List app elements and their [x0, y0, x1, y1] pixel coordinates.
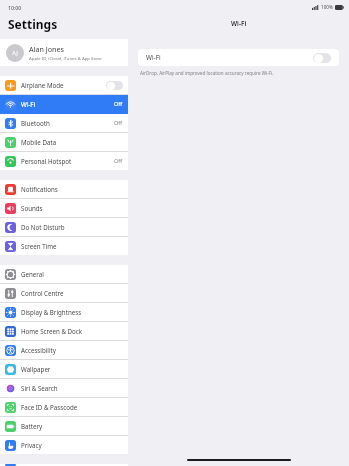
staticText: Wi-Fi: [146, 53, 161, 62]
staticText: Privacy: [21, 441, 42, 449]
button[interactable]: Wi-Fi: [0, 95, 128, 113]
staticText: Apple ID, iCloud, iTunes & App Store: [29, 55, 102, 61]
button[interactable]: Notifications: [0, 180, 128, 198]
staticText: Face ID & Passcode: [21, 403, 78, 411]
staticText: 10:00: [8, 4, 22, 11]
staticText: Bluetooth: [21, 119, 50, 127]
staticText: Wi-Fi: [231, 19, 247, 28]
button[interactable]: Siri & Search: [0, 379, 128, 397]
staticText: General: [21, 270, 44, 278]
button[interactable]: Personal Hotspot: [0, 152, 128, 170]
button[interactable]: Bluetooth: [0, 114, 128, 132]
staticText: Home Screen & Dock: [21, 327, 83, 335]
staticText: Control Centre: [21, 289, 64, 297]
staticText: Wi-Fi: [21, 100, 36, 108]
staticText: Mobile Data: [21, 138, 57, 146]
staticText: Battery: [21, 422, 43, 430]
button[interactable]: Sounds: [0, 199, 128, 217]
button[interactable]: Display & Brightness: [0, 303, 128, 321]
staticText: Off: [114, 157, 123, 165]
button[interactable]: Wi-Fi: [138, 49, 339, 66]
staticText: Settings: [8, 16, 58, 32]
staticText: Sounds: [21, 204, 43, 212]
staticText: Accessibility: [21, 346, 56, 354]
staticText: Display & Brightness: [21, 308, 82, 316]
staticText: Wallpaper: [21, 365, 51, 373]
staticText: Personal Hotspot: [21, 157, 72, 165]
button[interactable]: AJ: [0, 39, 128, 66]
button[interactable]: iTunes & App Store: [0, 464, 128, 466]
staticText: Do Not Disturb: [21, 223, 65, 231]
button[interactable]: Airplane Mode: [0, 76, 128, 94]
button[interactable]: Toggle off: [106, 81, 123, 90]
staticText: Alan Jones: [29, 44, 65, 54]
button[interactable]: Accessibility: [0, 341, 128, 359]
staticText: Screen Time: [21, 242, 57, 250]
button[interactable]: Wallpaper: [0, 360, 128, 378]
button[interactable]: Privacy: [0, 436, 128, 454]
button[interactable]: Screen Time: [0, 237, 128, 255]
button[interactable]: Do Not Disturb: [0, 218, 128, 236]
staticText: Airplane Mode: [21, 81, 64, 89]
staticText: 100%: [321, 4, 333, 10]
staticText: Siri & Search: [21, 384, 58, 392]
button[interactable]: General: [0, 265, 128, 283]
button[interactable]: Battery: [0, 417, 128, 435]
staticText: AJ: [12, 49, 18, 57]
staticText: Notifications: [21, 185, 58, 193]
button[interactable]: Control Centre: [0, 284, 128, 302]
staticText: AirDrop, AirPlay and improved location a…: [140, 70, 274, 76]
button[interactable]: Toggle off: [313, 53, 331, 63]
button[interactable]: Mobile Data: [0, 133, 128, 151]
staticText: Off: [114, 100, 123, 108]
button[interactable]: Home Screen & Dock: [0, 322, 128, 340]
button[interactable]: Face ID & Passcode: [0, 398, 128, 416]
staticText: Off: [114, 119, 123, 127]
